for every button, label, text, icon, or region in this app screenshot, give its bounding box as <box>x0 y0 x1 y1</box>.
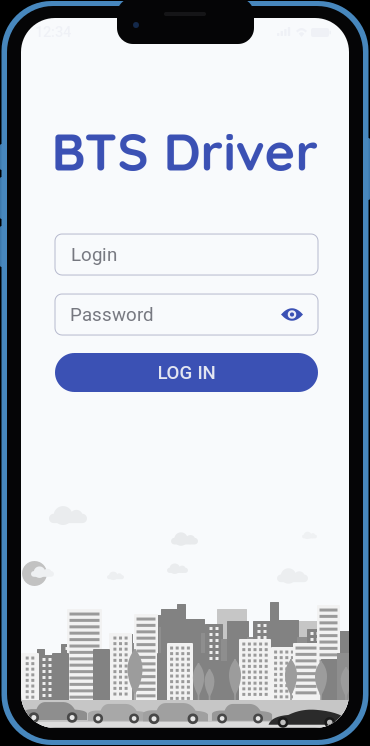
button[interactable]: Login <box>55 234 318 275</box>
staticText: BTS Driver <box>51 118 318 183</box>
button[interactable]: LOG IN <box>55 353 318 392</box>
staticText: Password <box>70 304 154 325</box>
staticText: LOG IN <box>157 362 215 383</box>
button[interactable]: Password <box>55 294 318 335</box>
staticText: Login <box>71 244 117 265</box>
staticText: 12:34 <box>35 23 71 41</box>
